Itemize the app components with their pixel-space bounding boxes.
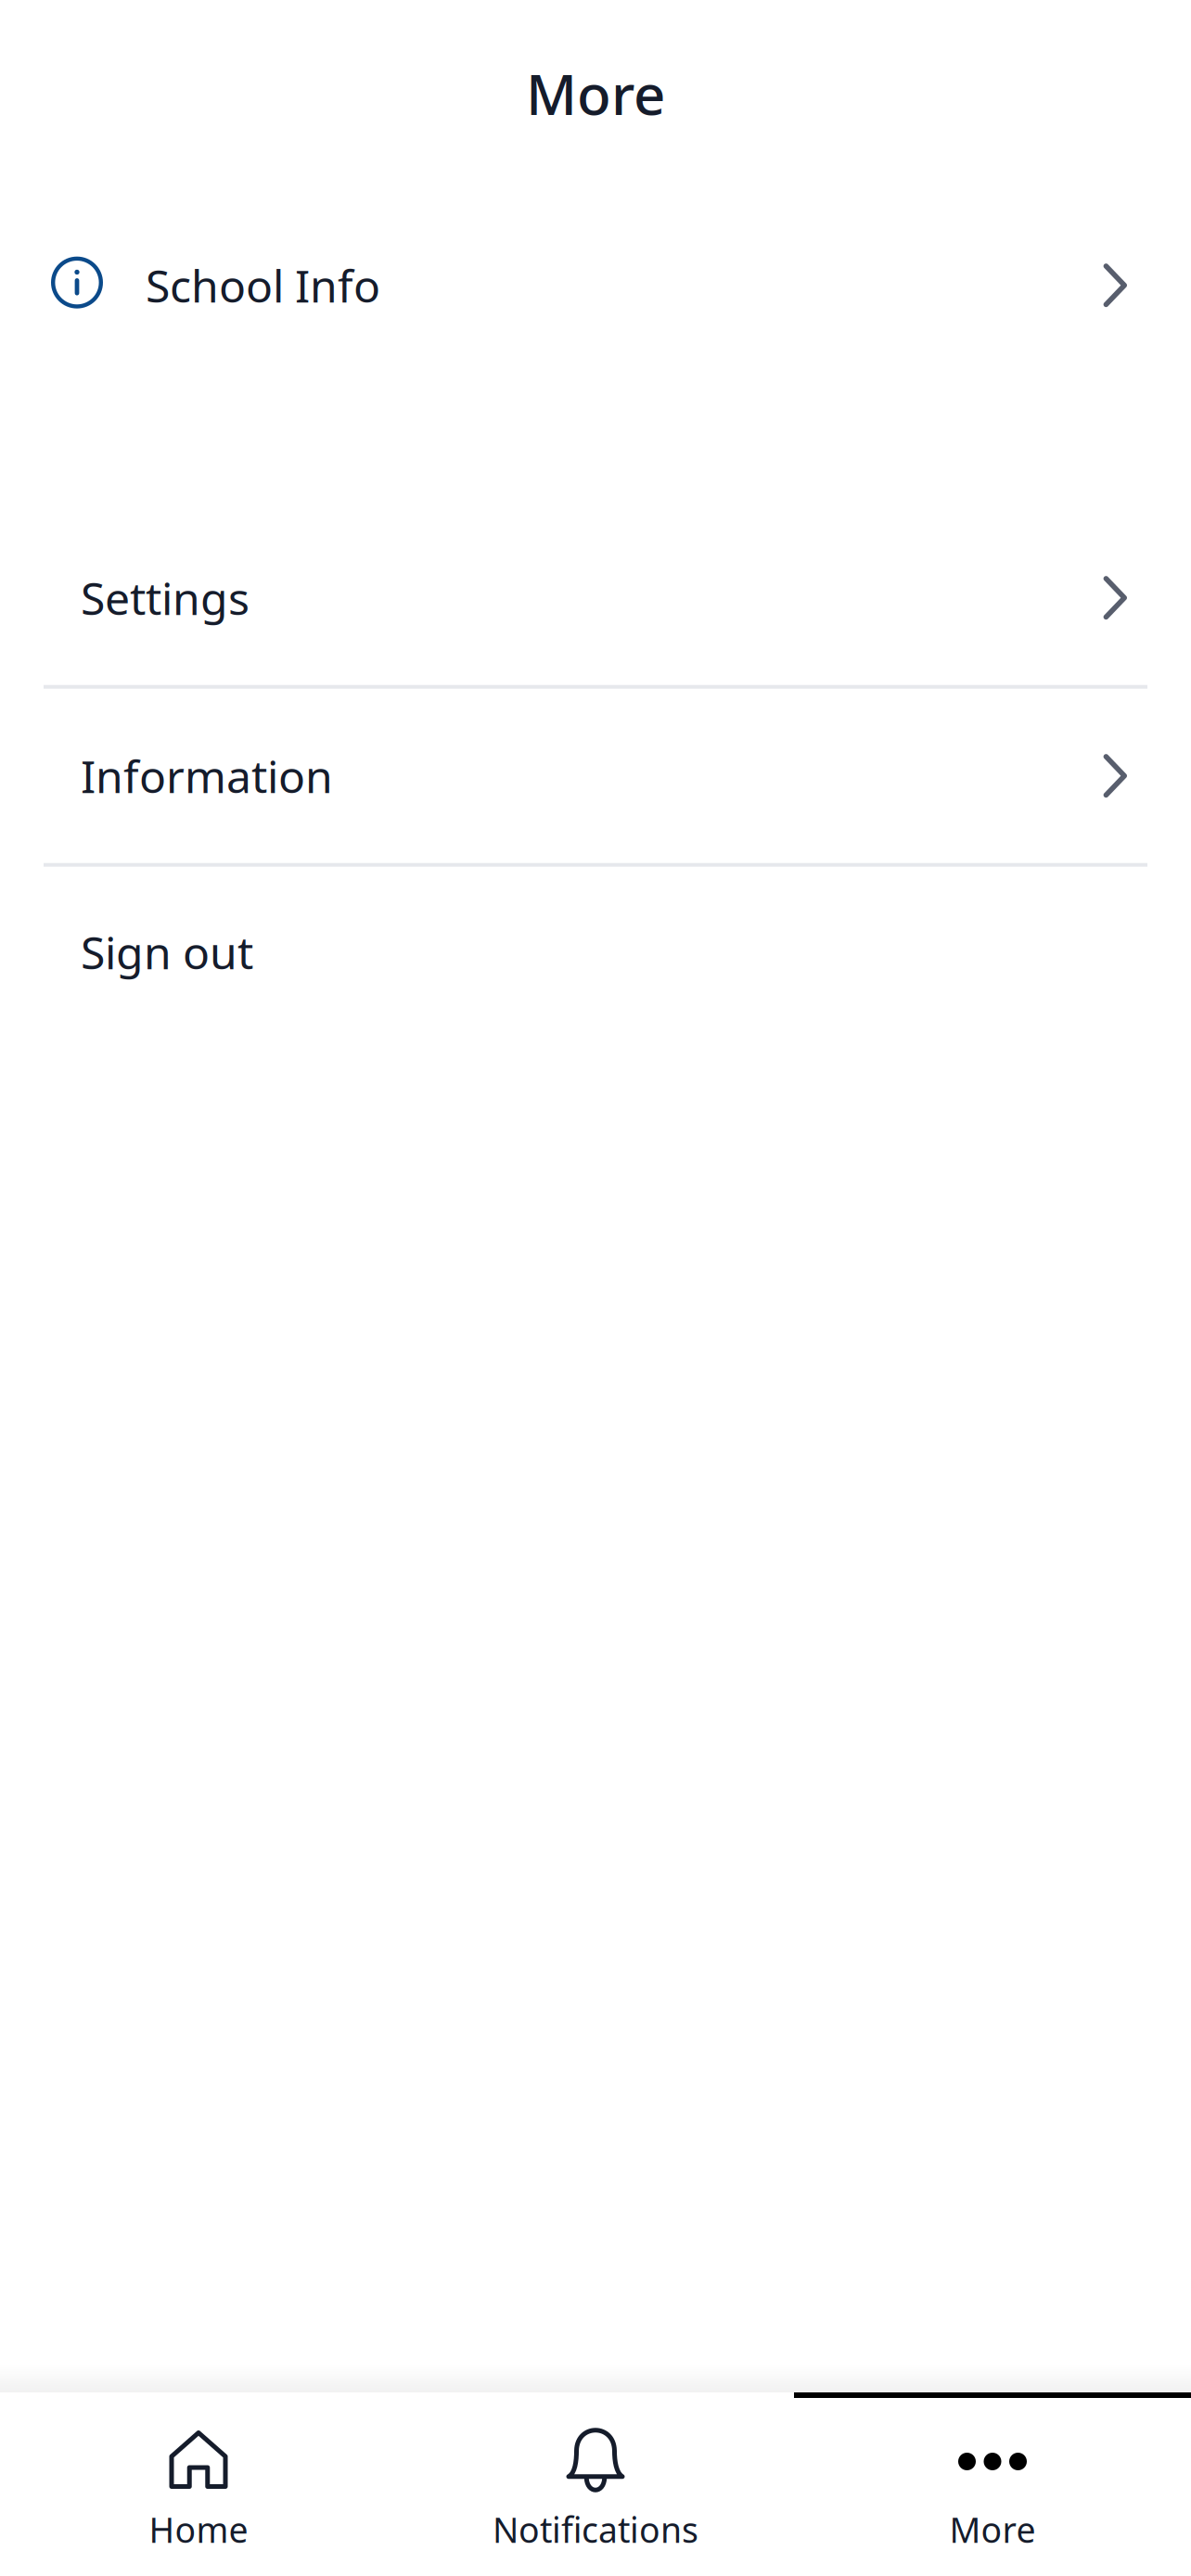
staticText: Notifications <box>493 2506 698 2552</box>
button[interactable]: More <box>794 2392 1191 2576</box>
staticText: Home <box>149 2506 248 2552</box>
staticText: School Info <box>146 256 380 315</box>
button[interactable]: Notifications <box>397 2392 794 2576</box>
staticText: Information <box>81 746 333 805</box>
button[interactable]: Information <box>0 689 1191 863</box>
button[interactable]: Sign out <box>0 867 1191 1037</box>
staticText: More <box>526 57 665 130</box>
staticText: More <box>949 2506 1036 2552</box>
staticText: Sign out <box>81 922 253 982</box>
button[interactable]: Home <box>0 2392 397 2576</box>
button[interactable]: Settings <box>0 511 1191 685</box>
button[interactable]: School Info <box>0 234 1191 336</box>
staticText: Settings <box>81 568 250 627</box>
